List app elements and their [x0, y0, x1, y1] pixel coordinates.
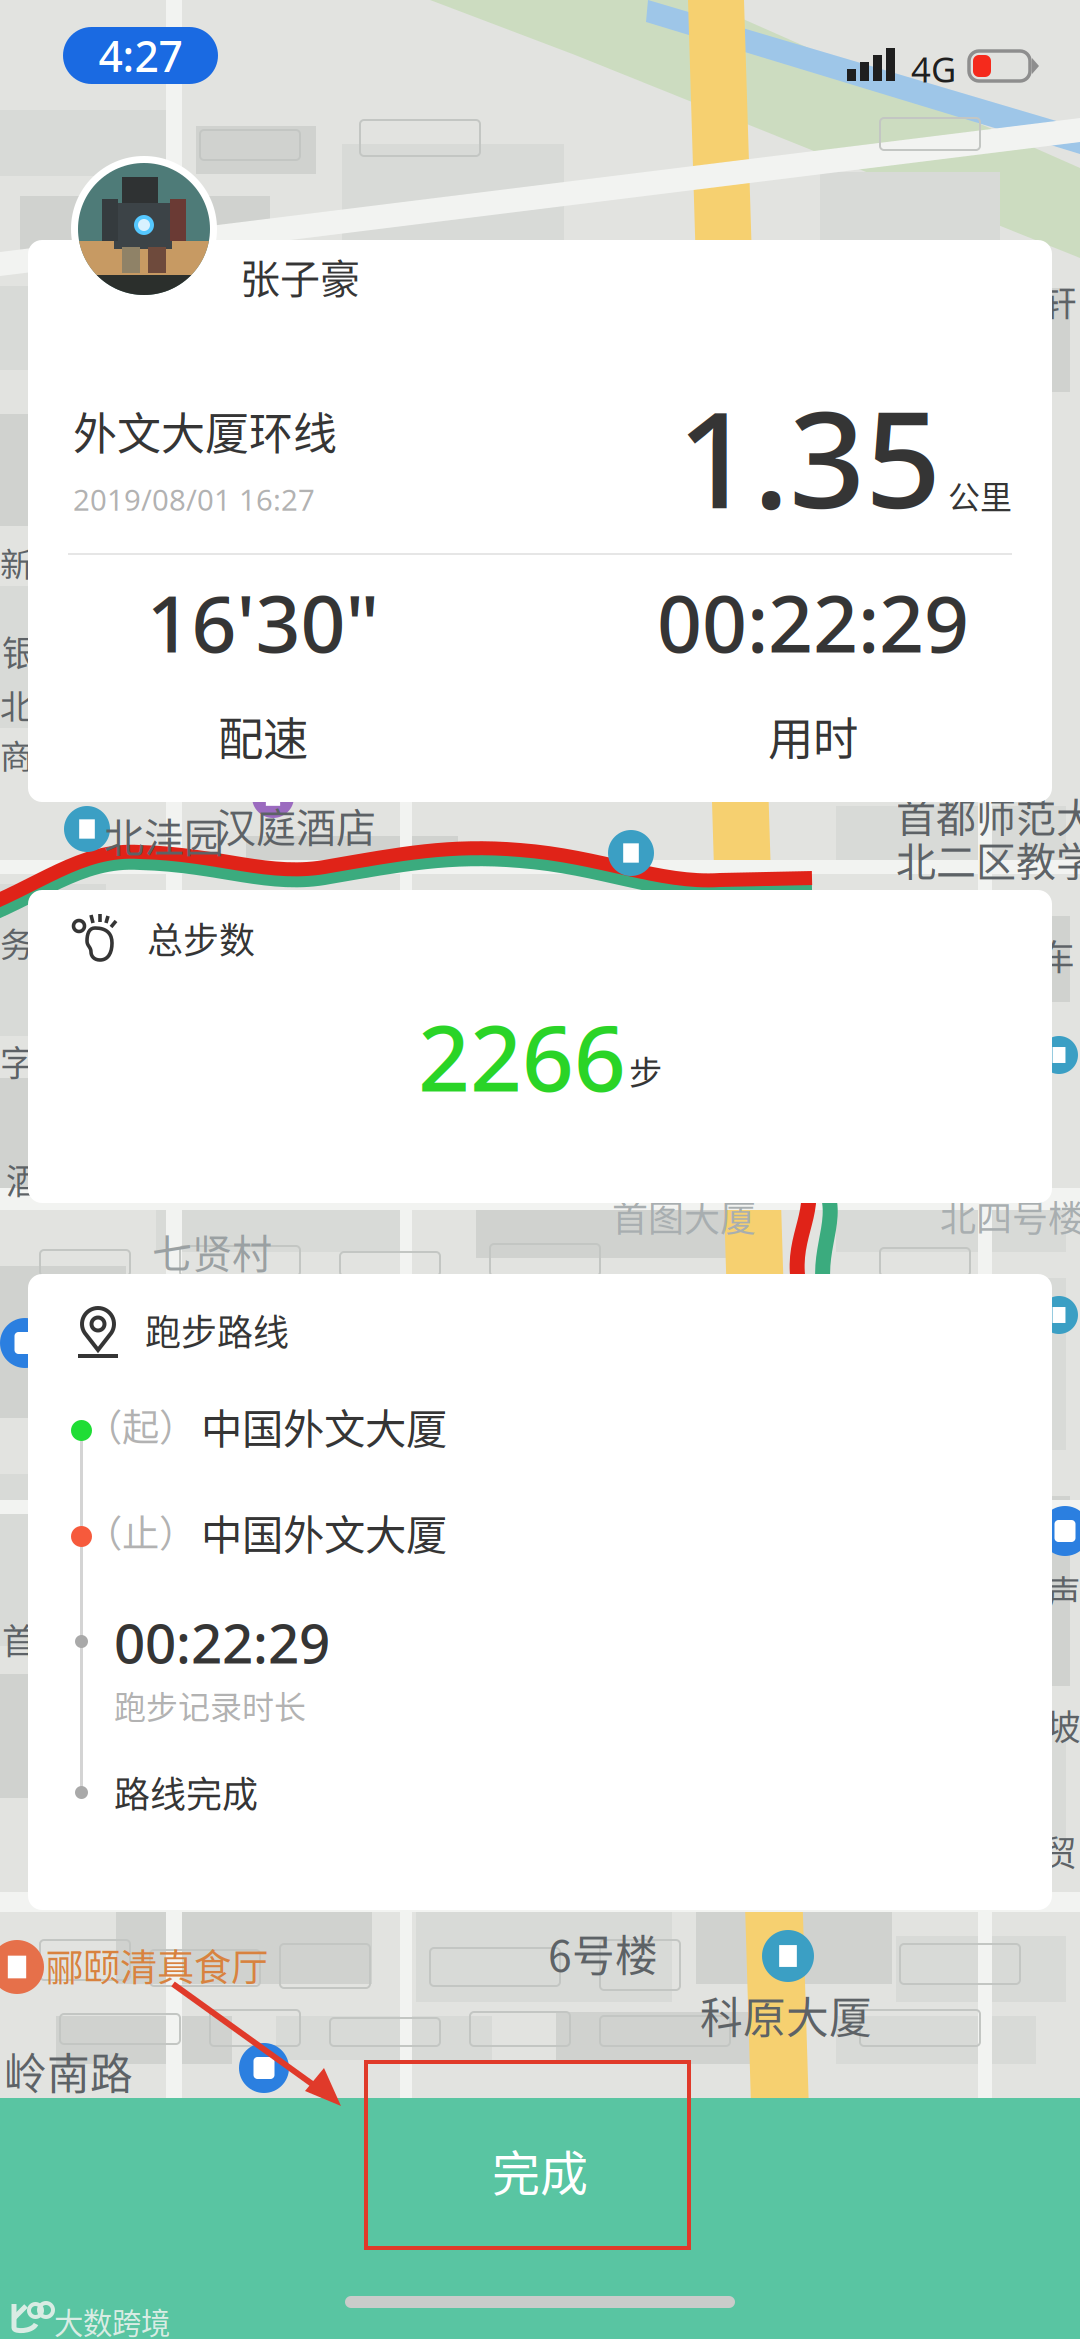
staticText: 2019/08/01 16:27: [73, 480, 315, 519]
staticText: 张子豪: [240, 247, 360, 305]
staticText: 商务: [0, 730, 66, 778]
staticText: 贸: [1042, 1826, 1077, 1876]
staticText: 完成: [492, 2135, 588, 2205]
staticText: 用时: [768, 703, 858, 769]
staticText: 新景: [0, 538, 66, 586]
staticText: 外文大厦环线: [73, 399, 337, 463]
staticText: 路线完成: [114, 1766, 258, 1818]
staticText: 中国外文大厦: [201, 1396, 447, 1456]
staticText: 步: [629, 1046, 662, 1094]
staticText: 首都师范大学: [896, 786, 1080, 844]
button[interactable]: 张子豪 个人主页: [71, 156, 217, 302]
staticText: 00:22:29: [114, 1606, 330, 1679]
staticText: 北四号楼: [940, 1190, 1080, 1242]
staticText: （起）: [85, 1398, 196, 1452]
staticText: 公里: [948, 472, 1012, 518]
staticText: 首图大厦: [612, 1190, 756, 1242]
button[interactable]: 完成: [0, 2098, 1080, 2339]
staticText: 配速: [218, 703, 308, 769]
staticText: 岭南路: [4, 2040, 133, 2102]
staticText: 6号楼: [548, 1922, 658, 1984]
staticText: 字村: [0, 1036, 70, 1086]
staticText: （止）: [85, 1504, 196, 1558]
staticText: 汉庭酒店: [216, 796, 376, 854]
staticText: 车: [1040, 930, 1075, 980]
staticText: 七贤村: [152, 1222, 272, 1280]
staticText: 16'30": [146, 570, 379, 674]
staticText: 2266: [418, 996, 626, 1116]
staticText: 酒厂: [6, 1154, 76, 1204]
staticText: 00:22:29: [657, 570, 969, 674]
staticText: 跑步记录时长: [114, 1682, 306, 1728]
staticText: 务中: [0, 918, 66, 966]
staticText: 轩: [1042, 276, 1077, 326]
staticText: 坡: [1046, 1700, 1080, 1750]
staticText: 大数跨境: [54, 2300, 170, 2339]
staticText: 4G: [911, 46, 956, 92]
staticText: 总步数: [147, 912, 255, 964]
staticText: 北二区教学楼: [896, 830, 1080, 888]
staticText: 科原大厦: [700, 1984, 872, 2046]
staticText: 声: [1046, 1566, 1080, 1616]
staticText: 郦颐清真食厅: [46, 1938, 268, 1992]
staticText: 北京: [0, 680, 66, 728]
staticText: 跑步路线: [145, 1304, 289, 1356]
staticText: 北洼园: [104, 806, 224, 864]
staticText: 银: [2, 626, 37, 676]
staticText: 首: [2, 1614, 37, 1664]
staticText: 4:27: [98, 27, 182, 84]
staticText: 中国外文大厦: [201, 1502, 447, 1562]
staticText: 1.35: [677, 368, 941, 545]
